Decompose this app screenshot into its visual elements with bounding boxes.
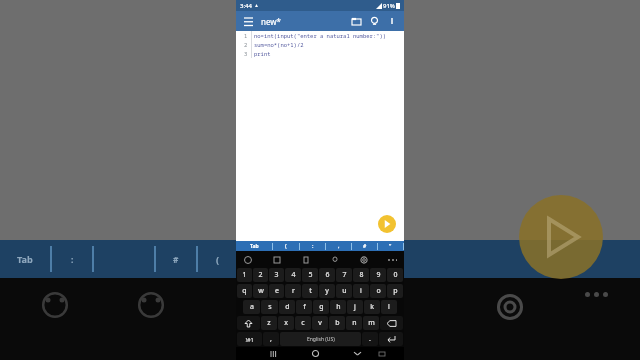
staticText: 3	[274, 270, 279, 280]
button[interactable]: a	[243, 300, 260, 314]
staticText: :	[312, 243, 314, 250]
staticText: print	[254, 50, 271, 57]
button[interactable]: Keyboard	[371, 347, 393, 360]
button[interactable]: Stickers	[271, 254, 282, 265]
button[interactable]: Tab	[236, 241, 272, 251]
staticText: :	[71, 254, 74, 265]
button[interactable]: 8	[353, 268, 369, 282]
button[interactable]: 7	[336, 268, 352, 282]
staticText: 0	[393, 270, 398, 280]
button[interactable]: Open folder	[349, 14, 363, 28]
button[interactable]: Hide keyboard	[343, 347, 371, 360]
button[interactable]: More options	[385, 14, 399, 28]
button[interactable]: (	[273, 241, 299, 251]
button[interactable]: #	[352, 241, 377, 251]
staticText: no=int(input("enter a natural number:"))	[254, 32, 387, 39]
button[interactable]: Run	[378, 215, 396, 233]
button[interactable]: Recents	[259, 347, 287, 360]
staticText: e	[275, 286, 279, 296]
staticText: x	[284, 318, 288, 328]
staticText: (	[216, 253, 220, 265]
button[interactable]: p	[387, 284, 403, 298]
button[interactable]: t	[302, 284, 318, 298]
button[interactable]: 2	[253, 268, 268, 282]
staticText: 6	[325, 270, 330, 280]
button[interactable]: Enter	[379, 332, 403, 346]
button[interactable]: b	[329, 316, 345, 330]
staticText: a	[250, 302, 254, 312]
button[interactable]: :	[300, 241, 325, 251]
button[interactable]: y	[319, 284, 335, 298]
staticText: ,	[338, 243, 340, 250]
staticText: 4	[291, 270, 296, 280]
staticText: .	[369, 334, 371, 344]
button[interactable]: 4	[285, 268, 301, 282]
button[interactable]: 6	[319, 268, 335, 282]
staticText: n	[352, 318, 357, 328]
button[interactable]: ,	[263, 332, 279, 346]
staticText: 7	[342, 270, 347, 280]
button[interactable]: Home	[301, 347, 329, 360]
staticText: s	[268, 302, 272, 312]
button[interactable]: j	[347, 300, 363, 314]
button[interactable]: q	[237, 284, 252, 298]
button[interactable]: e	[269, 284, 284, 298]
button[interactable]: o	[370, 284, 386, 298]
button[interactable]: w	[253, 284, 268, 298]
button[interactable]: ,	[326, 241, 351, 251]
button[interactable]: Keyboard settings	[358, 254, 369, 265]
button[interactable]: English (US)	[280, 332, 361, 346]
button[interactable]: "	[378, 241, 403, 251]
button[interactable]: d	[279, 300, 295, 314]
staticText: 5	[308, 270, 313, 280]
staticText: j	[354, 302, 356, 312]
staticText: d	[285, 302, 290, 312]
staticText: 9	[376, 270, 381, 280]
button[interactable]: Hints	[367, 14, 381, 28]
button[interactable]: Backspace	[380, 316, 403, 330]
button[interactable]: x	[278, 316, 294, 330]
button[interactable]: More	[387, 254, 398, 265]
button[interactable]: Voice input	[329, 254, 340, 265]
button[interactable]: g	[313, 300, 329, 314]
button[interactable]: !#1	[237, 332, 262, 346]
button[interactable]: l	[381, 300, 397, 314]
button[interactable]: u	[336, 284, 352, 298]
staticText: p	[393, 286, 398, 296]
staticText: w	[258, 286, 264, 296]
staticText: o	[376, 286, 381, 296]
button[interactable]: k	[364, 300, 380, 314]
staticText: new*	[261, 16, 281, 27]
button[interactable]: .	[362, 332, 378, 346]
button[interactable]: Emoji	[242, 254, 253, 265]
staticText: b	[335, 318, 340, 328]
staticText: c	[301, 318, 305, 328]
button[interactable]: m	[363, 316, 379, 330]
button[interactable]: 5	[302, 268, 318, 282]
button[interactable]: 3	[269, 268, 284, 282]
button[interactable]: v	[312, 316, 328, 330]
button[interactable]: r	[285, 284, 301, 298]
button[interactable]: i	[353, 284, 369, 298]
button[interactable]: 9	[370, 268, 386, 282]
button[interactable]: Shift	[237, 316, 260, 330]
staticText: ,	[270, 334, 272, 344]
staticText: t	[309, 286, 312, 296]
button[interactable]: f	[296, 300, 312, 314]
button[interactable]: z	[261, 316, 277, 330]
button[interactable]: h	[330, 300, 346, 314]
button[interactable]: 0	[387, 268, 403, 282]
staticText: u	[342, 286, 347, 296]
button[interactable]: s	[261, 300, 278, 314]
button[interactable]: Clipboard	[300, 254, 311, 265]
staticText: #	[363, 243, 367, 250]
staticText: 3:44	[240, 2, 252, 10]
staticText: "	[389, 243, 392, 250]
button[interactable]: 1	[237, 268, 252, 282]
button[interactable]: Menu	[241, 14, 255, 28]
staticText: z	[267, 318, 271, 328]
button[interactable]: n	[346, 316, 362, 330]
staticText: q	[242, 286, 247, 296]
staticText: m	[368, 318, 375, 328]
button[interactable]: c	[295, 316, 311, 330]
